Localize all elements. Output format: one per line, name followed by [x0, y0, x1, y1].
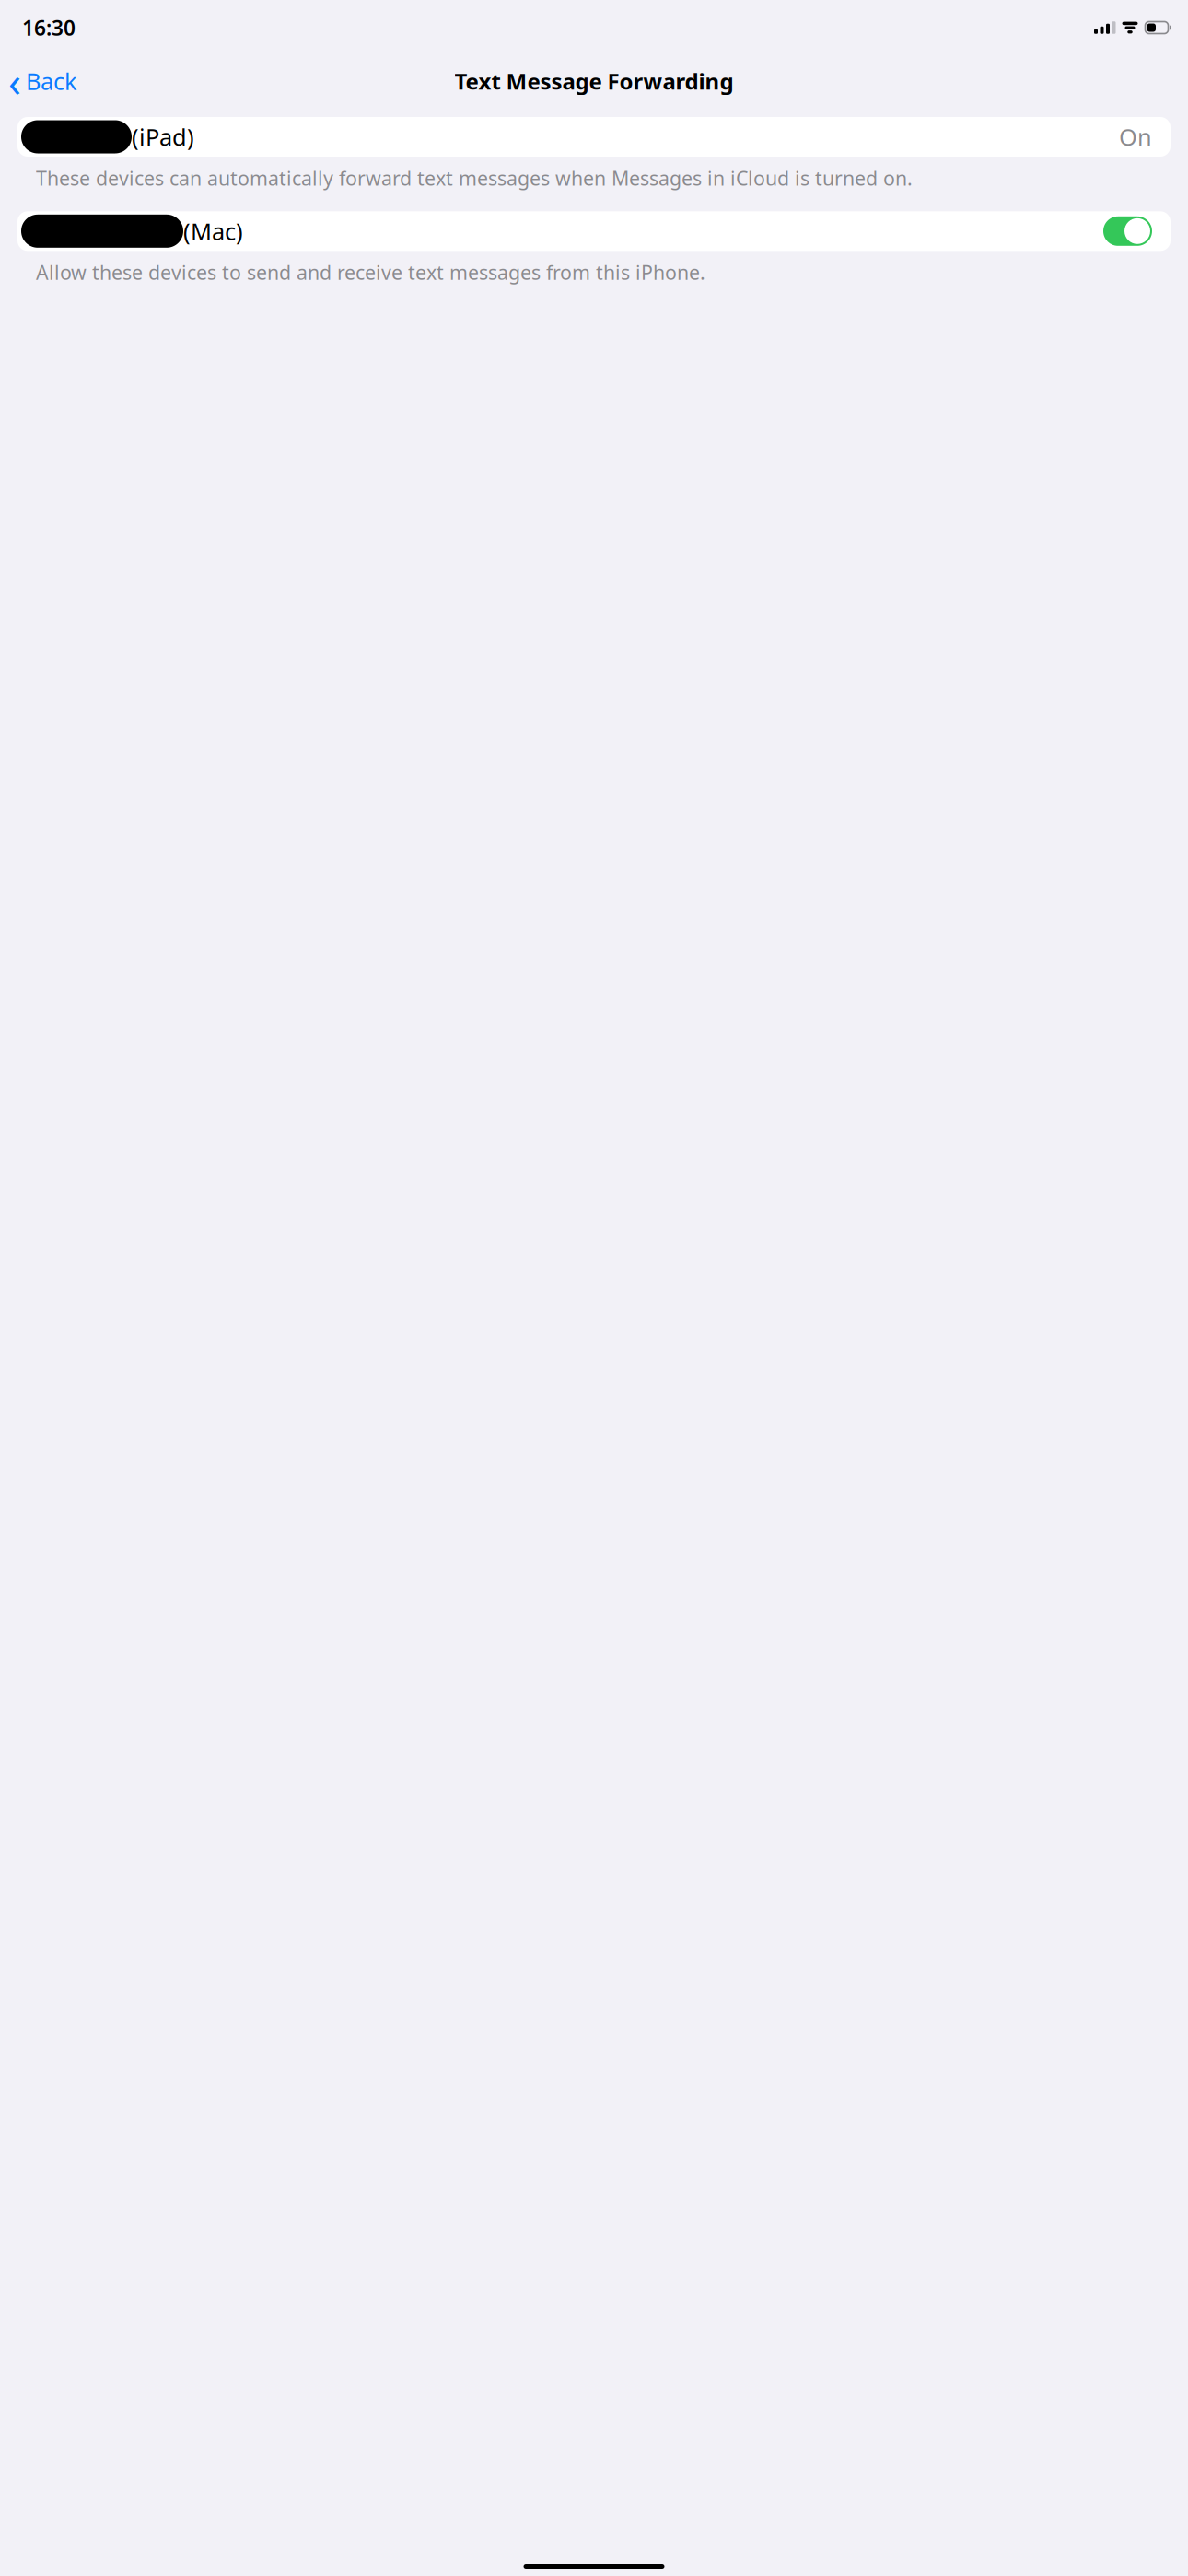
- staticText: Text Message Forwarding: [454, 66, 734, 96]
- button[interactable]: Mac: [17, 211, 1171, 251]
- staticText: Back: [26, 66, 77, 97]
- staticText: Allow these devices to send and receive …: [36, 259, 705, 285]
- staticText: (Mac): [183, 216, 243, 247]
- button[interactable]: ‹: [0, 63, 88, 100]
- button[interactable]: iPad, On: [17, 117, 1171, 157]
- staticText: 16:30: [22, 14, 76, 41]
- staticText: These devices can automatically forward …: [36, 165, 913, 191]
- staticText: ‹: [8, 53, 21, 109]
- staticText: (iPad): [132, 121, 194, 152]
- staticText: On: [1119, 121, 1152, 152]
